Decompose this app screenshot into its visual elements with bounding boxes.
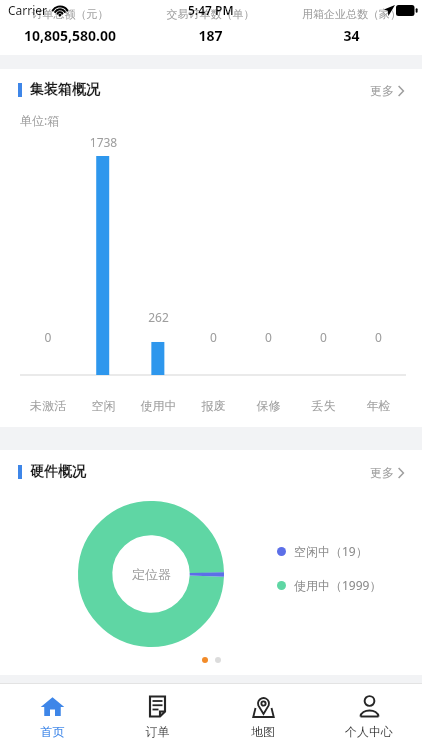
staticText: 187 bbox=[140, 26, 281, 45]
staticText: 262 bbox=[131, 309, 186, 325]
staticText: 空闲中（19） bbox=[294, 543, 368, 559]
staticText: 用箱企业总数（家） bbox=[281, 7, 422, 21]
staticText: 首页 bbox=[0, 724, 105, 739]
staticText: 未激活 bbox=[20, 398, 76, 413]
staticText: 报废 bbox=[186, 398, 241, 413]
button[interactable]: 地图 bbox=[210, 684, 316, 750]
button[interactable]: 订单总额（元） bbox=[0, 0, 140, 55]
staticText: 集装箱概况 bbox=[30, 81, 100, 99]
staticText: 硬件概况 bbox=[30, 463, 86, 481]
staticText: 单位:箱 bbox=[20, 112, 60, 128]
button[interactable]: 更多 bbox=[366, 77, 408, 104]
staticText: 更多 bbox=[370, 83, 394, 98]
staticText: 地图 bbox=[210, 724, 316, 739]
staticText: 使用中（1999） bbox=[294, 577, 382, 593]
staticText: 使用中 bbox=[131, 398, 186, 413]
staticText: 丢失 bbox=[296, 398, 351, 413]
staticText: 定位器 bbox=[132, 566, 171, 582]
staticText: 34 bbox=[281, 26, 422, 45]
staticText: 0 bbox=[186, 329, 241, 345]
staticText: Carrier bbox=[8, 2, 48, 18]
staticText: 订单总额（元） bbox=[0, 7, 140, 21]
button[interactable]: 空闲中（19） bbox=[277, 543, 368, 559]
staticText: 更多 bbox=[370, 465, 394, 480]
staticText: 订单 bbox=[105, 724, 210, 739]
staticText: 保修 bbox=[241, 398, 296, 413]
button[interactable]: 交易订单数（单） bbox=[140, 0, 281, 55]
staticText: 1738 bbox=[76, 134, 131, 150]
staticText: 空闲 bbox=[76, 398, 131, 413]
staticText: 0 bbox=[296, 329, 351, 345]
staticText: 5:47 PM bbox=[188, 2, 234, 18]
button[interactable]: 更多 bbox=[366, 459, 408, 486]
staticText: 年检 bbox=[351, 398, 406, 413]
staticText: 0 bbox=[20, 329, 76, 345]
staticText: 0 bbox=[351, 329, 406, 345]
staticText: 10,805,580.00 bbox=[0, 26, 140, 45]
button[interactable]: 个人中心 bbox=[316, 684, 422, 750]
staticText: 交易订单数（单） bbox=[140, 7, 281, 21]
staticText: 0 bbox=[241, 329, 296, 345]
staticText: 个人中心 bbox=[316, 724, 422, 739]
button[interactable]: 使用中（1999） bbox=[277, 577, 382, 593]
button[interactable]: 首页 bbox=[0, 684, 105, 750]
button[interactable]: 订单 bbox=[105, 684, 210, 750]
button[interactable]: 用箱企业总数（家） bbox=[281, 0, 422, 55]
